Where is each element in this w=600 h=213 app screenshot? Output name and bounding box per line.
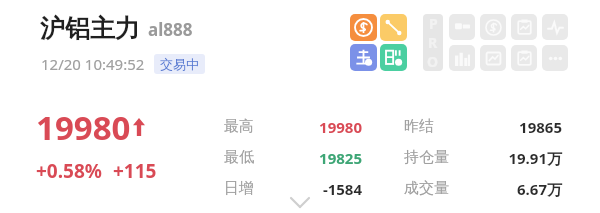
staticText: 日增 <box>224 179 282 198</box>
button[interactable]: 日增 <box>224 173 362 204</box>
staticText: 19980 <box>282 117 362 137</box>
button[interactable]: 交易中 <box>154 54 205 74</box>
button[interactable]: Trend <box>380 14 407 41</box>
button[interactable]: Pulse <box>542 14 568 40</box>
button[interactable]: Funds <box>350 14 377 41</box>
staticText: -1584 <box>282 179 362 199</box>
button[interactable]: Report <box>511 14 537 40</box>
staticText: 19980 <box>36 105 131 150</box>
staticText: 12/20 10:49:52 <box>41 54 145 74</box>
staticText: 成交量 <box>404 179 470 198</box>
button[interactable]: PRO <box>423 14 443 71</box>
button[interactable]: 最高 <box>224 111 362 142</box>
staticText: +0.58% <box>36 158 102 184</box>
button[interactable]: Main <box>350 44 377 71</box>
button[interactable]: Bars <box>449 45 475 71</box>
button[interactable]: Money <box>480 14 506 40</box>
button[interactable]: Expand <box>280 193 320 211</box>
staticText: P <box>429 14 438 33</box>
staticText: 昨结 <box>404 117 470 136</box>
staticText: 持仓量 <box>404 148 470 167</box>
button[interactable]: More <box>542 45 568 71</box>
button[interactable]: Note <box>511 45 537 71</box>
button[interactable]: 最低 <box>224 142 362 173</box>
staticText: al888 <box>148 18 193 41</box>
staticText: R <box>428 33 438 52</box>
staticText: 19865 <box>470 117 562 137</box>
button[interactable]: 持仓量 <box>404 142 562 173</box>
button[interactable]: Chart <box>480 45 506 71</box>
staticText: 沪铝主力 <box>40 13 140 44</box>
staticText: +115 <box>113 158 157 184</box>
button[interactable]: 昨结 <box>404 111 562 142</box>
staticText: 最低 <box>224 148 282 167</box>
staticText: 19.91万 <box>470 148 562 168</box>
staticText: 最高 <box>224 117 282 136</box>
button[interactable]: Card <box>449 14 475 40</box>
staticText: 6.67万 <box>470 179 562 199</box>
staticText: 交易中 <box>160 56 199 72</box>
button[interactable]: 成交量 <box>404 173 562 204</box>
button[interactable]: 沪铝主力 <box>40 13 193 44</box>
staticText: O <box>427 52 439 71</box>
button[interactable]: 副 <box>380 44 407 71</box>
staticText: 19825 <box>282 148 362 168</box>
